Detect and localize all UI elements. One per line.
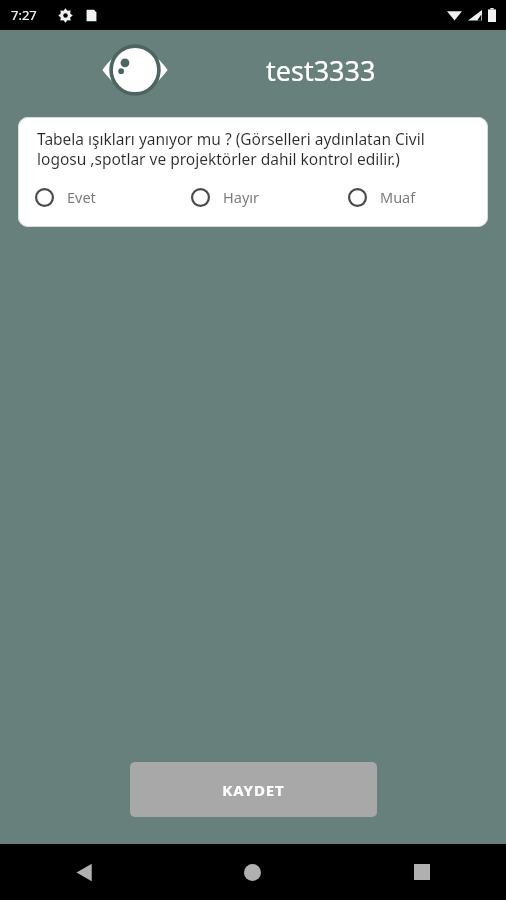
button[interactable]: Home — [168, 844, 337, 900]
staticText: Evet — [67, 187, 96, 207]
button[interactable]: Back — [0, 844, 168, 900]
staticText: Tabela ışıkları yanıyor mu ? (Görselleri… — [37, 128, 472, 170]
staticText: Hayır — [223, 187, 260, 207]
button[interactable]: Hayır — [174, 183, 331, 211]
staticText: KAYDET — [222, 780, 285, 800]
staticText: 7:27 — [11, 6, 37, 24]
button[interactable]: KAYDET — [130, 762, 377, 817]
button[interactable]: Muaf — [331, 183, 488, 211]
staticText: test3333 — [266, 52, 376, 89]
button[interactable]: Evet — [18, 183, 174, 211]
staticText: Muaf — [380, 187, 416, 207]
button[interactable]: Recent apps — [337, 844, 506, 900]
other: App logo — [101, 44, 169, 96]
